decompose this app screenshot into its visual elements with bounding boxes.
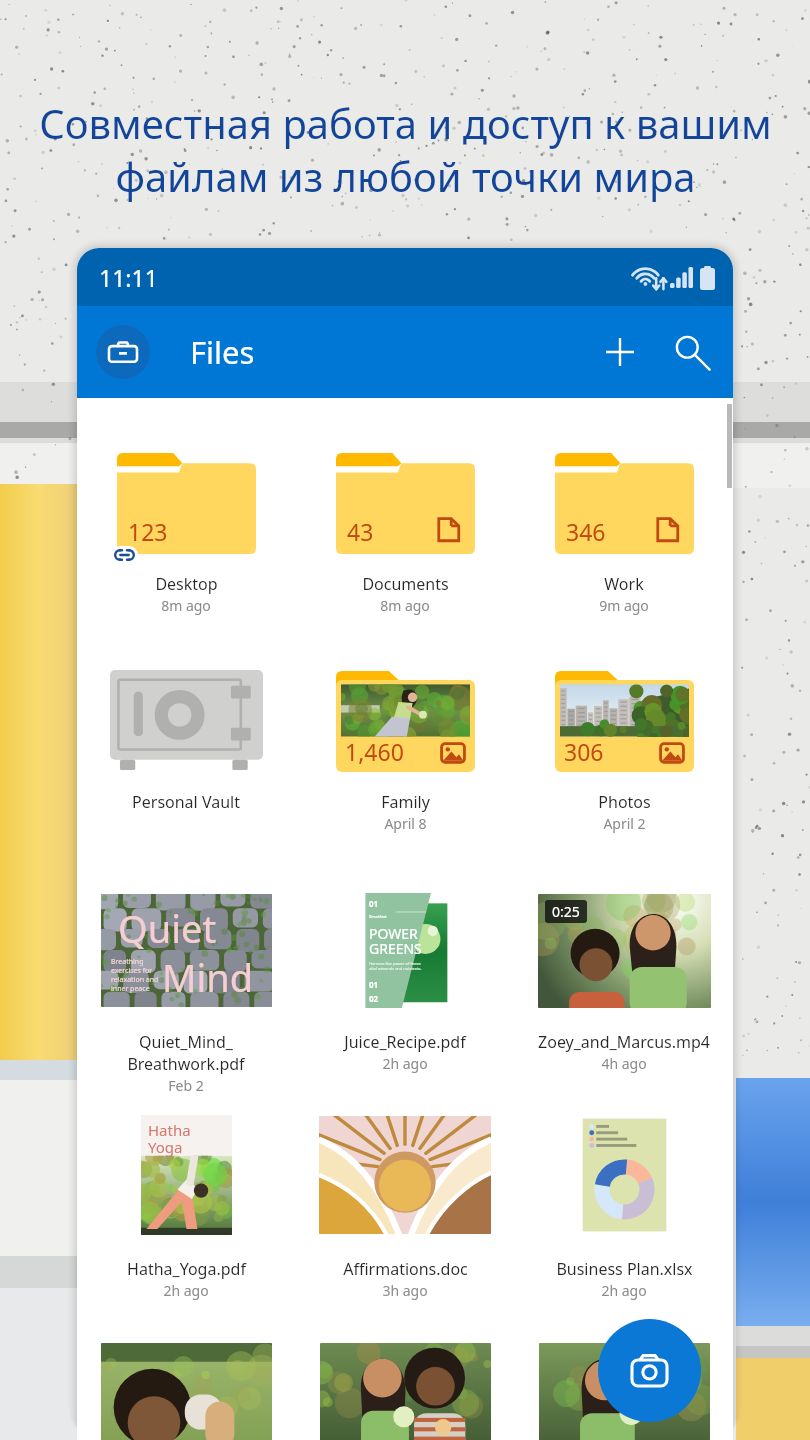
staticText: Documents bbox=[362, 573, 449, 595]
button[interactable]: Search bbox=[659, 321, 721, 383]
staticText: Desktop bbox=[155, 573, 218, 595]
button[interactable]: Account bbox=[96, 325, 150, 379]
button[interactable]: Hatha Yoga bbox=[77, 1111, 295, 1300]
button[interactable]: Add bbox=[589, 321, 651, 383]
staticText: Hatha Yoga bbox=[148, 1120, 191, 1158]
staticText: 123 bbox=[128, 516, 168, 547]
staticText: 3h ago bbox=[382, 1281, 428, 1300]
button[interactable]: 1,460 bbox=[296, 670, 514, 833]
staticText: 306 bbox=[564, 736, 604, 767]
staticText: 01 bbox=[369, 979, 379, 990]
button[interactable]: 43 bbox=[296, 453, 514, 615]
staticText: Photos bbox=[598, 791, 651, 813]
staticText: Files bbox=[190, 331, 255, 373]
staticText: 2h ago bbox=[382, 1054, 428, 1073]
button[interactable]: 0:25 bbox=[515, 889, 733, 1073]
staticText: 0:25 bbox=[552, 902, 580, 921]
staticText: 4h ago bbox=[601, 1054, 647, 1073]
staticText: 11:11 bbox=[99, 262, 158, 293]
staticText: April 2 bbox=[603, 814, 646, 833]
staticText: Affirmations.doc bbox=[343, 1258, 468, 1280]
staticText: Breakfast bbox=[369, 914, 387, 919]
button[interactable] bbox=[515, 1339, 733, 1440]
staticText: 346 bbox=[566, 516, 606, 547]
staticText: Business Plan.xlsx bbox=[556, 1258, 693, 1280]
staticText: Quiet_Mind_ Breathwork.pdf bbox=[127, 1031, 245, 1075]
staticText: Breathing exercises for relaxation and i… bbox=[111, 957, 159, 993]
staticText: 1,460 bbox=[345, 736, 404, 767]
staticText: Quiet bbox=[118, 902, 217, 954]
staticText: Work bbox=[604, 573, 644, 595]
staticText: Harness the power of these vital mineral… bbox=[369, 961, 422, 971]
staticText: Family bbox=[381, 791, 430, 813]
button[interactable]: Quiet bbox=[77, 889, 295, 1095]
staticText: 8m ago bbox=[161, 596, 211, 615]
staticText: Feb 2 bbox=[168, 1076, 204, 1095]
staticText: Совместная работа и доступ к вашим файла… bbox=[39, 96, 772, 204]
staticText: Zoey_and_Marcus.mp4 bbox=[538, 1031, 710, 1053]
staticText: 43 bbox=[347, 516, 374, 547]
staticText: Mind bbox=[162, 951, 254, 1003]
staticText: 01 bbox=[369, 898, 379, 909]
staticText: 2h ago bbox=[163, 1281, 209, 1300]
button[interactable] bbox=[77, 1339, 295, 1440]
staticText: April 8 bbox=[384, 814, 427, 833]
button[interactable]: Affirmations.doc bbox=[296, 1111, 514, 1300]
button[interactable]: Business Plan.xlsx bbox=[515, 1111, 733, 1300]
button[interactable]: 01 bbox=[296, 889, 514, 1073]
button[interactable]: Personal Vault bbox=[77, 670, 295, 813]
staticText: POWER GREENS bbox=[369, 924, 422, 958]
staticText: Personal Vault bbox=[132, 791, 240, 813]
staticText: Juice_Recipe.pdf bbox=[344, 1031, 466, 1053]
staticText: 8m ago bbox=[380, 596, 430, 615]
button[interactable]: Take photo bbox=[598, 1319, 701, 1422]
staticText: 02 bbox=[369, 993, 379, 1004]
button[interactable]: 306 bbox=[515, 670, 733, 833]
staticText: 9m ago bbox=[599, 596, 649, 615]
button[interactable] bbox=[296, 1339, 514, 1440]
button[interactable]: 123 bbox=[77, 453, 295, 615]
staticText: Hatha_Yoga.pdf bbox=[127, 1258, 246, 1280]
staticText: 2h ago bbox=[601, 1281, 647, 1300]
button[interactable]: 346 bbox=[515, 453, 733, 615]
